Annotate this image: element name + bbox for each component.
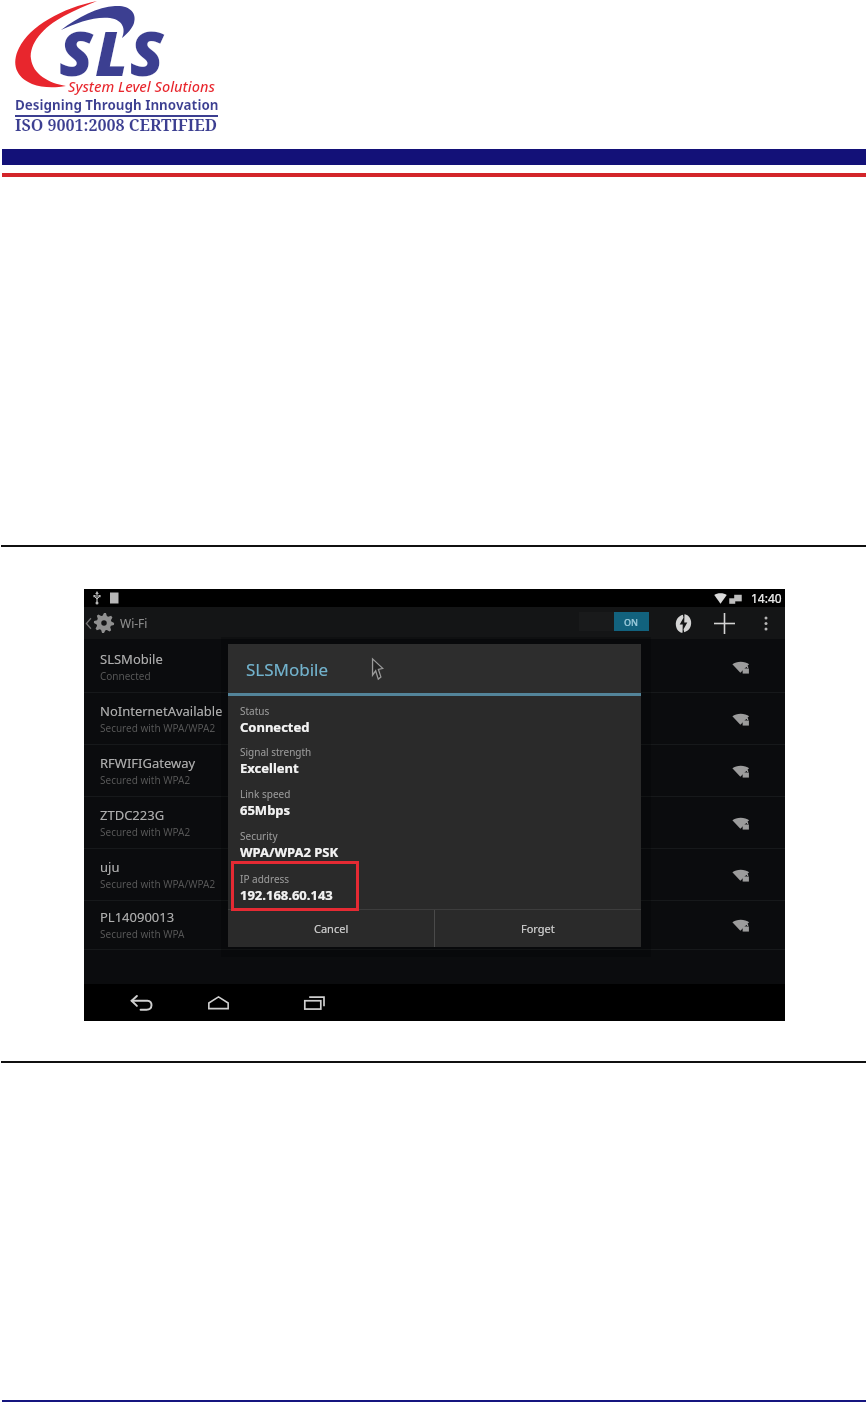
- staticText: Connected: [240, 718, 310, 736]
- staticText: Secured with WPA2: [100, 825, 191, 839]
- button[interactable]: PL14090013: [84, 901, 785, 950]
- staticText: RFWIFIGateway: [100, 754, 196, 772]
- staticText: Excellent: [240, 759, 299, 777]
- staticText: Link speed: [240, 787, 291, 801]
- staticText: 192.168.60.143: [240, 886, 333, 904]
- button[interactable]: ZTDC223G: [84, 797, 785, 849]
- staticText: Security: [240, 829, 278, 843]
- staticText: Signal strength: [240, 745, 312, 759]
- button[interactable]: uju: [84, 849, 785, 901]
- button[interactable]: Add network: [708, 607, 741, 639]
- staticText: IP address: [240, 872, 290, 886]
- button[interactable]: SLSMobile: [84, 641, 785, 693]
- staticText: WPA/WPA2 PSK: [240, 843, 339, 861]
- staticText: Secured with WPA/WPA2: [100, 721, 216, 735]
- button[interactable]: RFWIFIGateway: [84, 745, 785, 797]
- button[interactable]: Cancel: [228, 910, 434, 947]
- button[interactable]: ON: [579, 612, 649, 631]
- staticText: SLSMobile: [246, 658, 329, 681]
- button[interactable]: Home: [196, 984, 240, 1021]
- staticText: ISO 9001:2008 CERTIFIED: [15, 114, 217, 136]
- staticText: Status: [240, 704, 270, 718]
- staticText: SLS: [59, 10, 166, 94]
- button[interactable]: NoInternetAvailable: [84, 693, 785, 745]
- staticText: uju: [100, 858, 120, 876]
- staticText: System Level Solutions: [68, 76, 215, 96]
- staticText: 65Mbps: [240, 801, 291, 819]
- button[interactable]: More options: [752, 609, 780, 637]
- staticText: PL14090013: [100, 908, 175, 926]
- button[interactable]: Wi-Fi: [85, 612, 148, 634]
- staticText: Forget: [521, 921, 555, 936]
- staticText: Connected: [100, 669, 151, 683]
- staticText: ON: [624, 616, 639, 628]
- button[interactable]: Scan: [667, 607, 699, 639]
- staticText: NoInternetAvailable: [100, 702, 223, 720]
- button[interactable]: Forget: [435, 910, 641, 947]
- staticText: Wi-Fi: [120, 615, 148, 631]
- button[interactable]: Recents: [292, 984, 336, 1021]
- staticText: Cancel: [314, 921, 349, 936]
- staticText: Designing Through Innovation: [15, 96, 219, 114]
- staticText: Secured with WPA: [100, 927, 185, 941]
- staticText: ZTDC223G: [100, 806, 165, 824]
- staticText: Secured with WPA2: [100, 773, 191, 787]
- button[interactable]: Back: [119, 984, 163, 1021]
- staticText: 14:40: [751, 590, 782, 606]
- staticText: Secured with WPA/WPA2: [100, 877, 216, 891]
- staticText: SLSMobile: [100, 650, 163, 668]
